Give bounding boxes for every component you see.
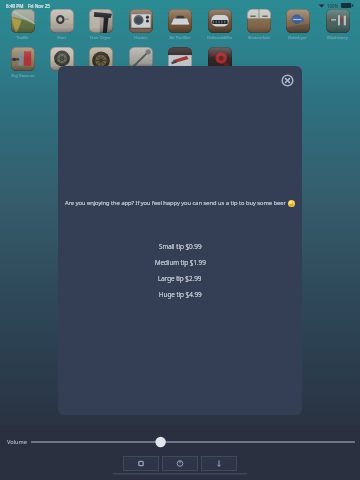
staticText: Traffic (16, 35, 29, 41)
button[interactable]: Close (278, 71, 296, 89)
staticText: Machinery (327, 35, 348, 41)
staticText: Dehumidifier (207, 35, 232, 41)
staticText: 100% (327, 3, 339, 9)
button[interactable]: Heater (129, 9, 153, 33)
staticText: Hairdryer (288, 35, 307, 41)
button[interactable]: Large tip $2.99 (61, 270, 299, 286)
button[interactable]: Medium tip $1.99 (61, 254, 299, 270)
staticText: Are you enjoying the app? If you feel ha… (65, 199, 286, 207)
button[interactable]: Power (162, 456, 198, 471)
button[interactable]: Shower (129, 47, 153, 71)
staticText: Vent (57, 35, 66, 41)
staticText: Huge tip $4.99 (159, 290, 202, 299)
staticText: Volume (7, 438, 27, 446)
staticText: Heater (134, 35, 148, 41)
button[interactable]: Turbine (89, 47, 113, 71)
button[interactable]: Volume down (201, 456, 237, 471)
button[interactable]: Big Vacuum (11, 47, 35, 71)
staticText: Air Purifier (169, 35, 191, 41)
button[interactable] (31, 436, 355, 448)
staticText: Hair Dryer (90, 35, 111, 41)
button[interactable]: Showerbox (247, 9, 271, 33)
button[interactable]: Machinery (326, 9, 350, 33)
button[interactable]: Air Purifier (168, 9, 192, 33)
button[interactable]: Huge tip $4.99 (61, 286, 299, 302)
button[interactable]: Red (208, 47, 232, 71)
staticText: Large tip $2.99 (158, 274, 202, 283)
button[interactable]: Traffic (11, 9, 35, 33)
staticText: 6:40 PM (6, 3, 24, 9)
button[interactable]: Home (123, 456, 159, 471)
button[interactable]: Small tip $0.99 (61, 238, 299, 254)
staticText: Showerbox (248, 35, 270, 41)
staticText: Medium tip $1.99 (155, 258, 206, 267)
button[interactable]: Desk (168, 47, 192, 71)
staticText: Big Vacuum (11, 73, 35, 79)
button[interactable]: Hair Dryer (89, 9, 113, 33)
button[interactable]: Dehumidifier (208, 9, 232, 33)
staticText: Small tip $0.99 (159, 242, 202, 251)
button[interactable]: Fan (50, 47, 74, 71)
staticText: Fri Nov 25 (28, 3, 50, 9)
button[interactable]: Hairdryer (286, 9, 310, 33)
button[interactable]: Vent (50, 9, 74, 33)
